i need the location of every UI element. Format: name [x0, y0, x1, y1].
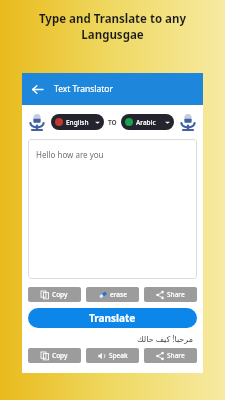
button[interactable]: Speak: [86, 348, 139, 363]
staticText: Copy: [52, 351, 68, 360]
button[interactable]: Copy: [28, 348, 81, 363]
button[interactable]: Hello how are you: [28, 139, 197, 279]
staticText: Speak: [109, 351, 128, 360]
staticText: Share: [167, 290, 185, 299]
staticText: مرحبا! كيف حالك: [22, 333, 193, 344]
button[interactable]: erase: [86, 287, 139, 302]
staticText: Arabic: [136, 118, 165, 127]
button[interactable]: Back: [29, 81, 45, 97]
button[interactable]: Translate: [28, 308, 197, 328]
staticText: Text Translator: [54, 83, 113, 95]
staticText: Copy: [52, 290, 68, 299]
button[interactable]: Arabic: [121, 114, 174, 130]
button[interactable]: Copy: [28, 287, 81, 302]
button[interactable]: English: [51, 114, 104, 130]
staticText: English: [66, 118, 95, 127]
staticText: Translate: [89, 311, 136, 325]
staticText: Type and Translate to any Langusgae: [18, 11, 207, 42]
staticText: erase: [110, 290, 127, 299]
staticText: Hello how are you: [36, 149, 104, 160]
button[interactable]: Speak source language: [27, 112, 47, 132]
button[interactable]: Share: [144, 348, 197, 363]
staticText: Share: [167, 351, 185, 360]
button[interactable]: Share: [144, 287, 197, 302]
button[interactable]: Speak target language: [178, 112, 198, 132]
staticText: TO: [108, 118, 117, 127]
